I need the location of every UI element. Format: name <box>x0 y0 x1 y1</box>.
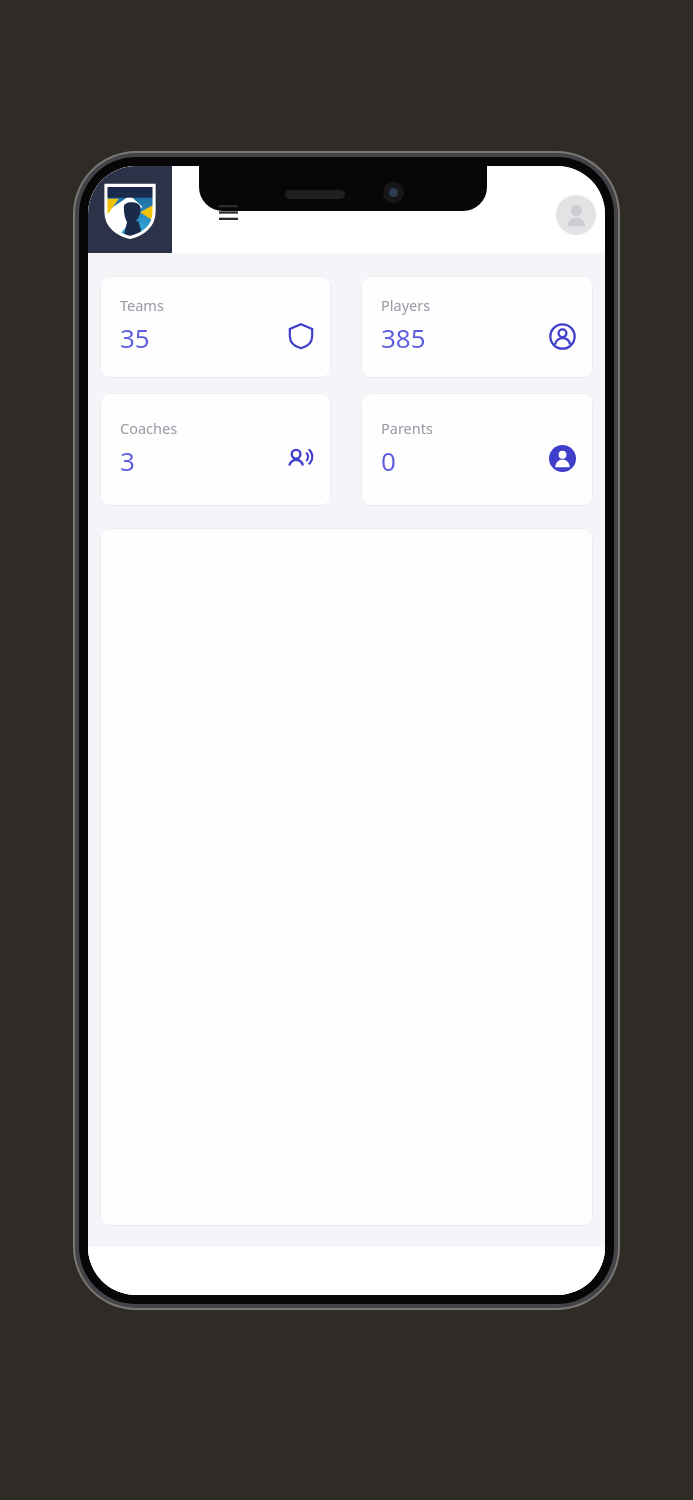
staticText: Players <box>381 295 431 315</box>
button[interactable]: Players <box>361 276 593 378</box>
button[interactable]: Coaches <box>100 393 331 506</box>
button[interactable]: Parents <box>361 393 593 506</box>
staticText: 35 <box>120 320 150 355</box>
staticText: 3 <box>120 443 135 478</box>
staticText: 385 <box>381 320 426 355</box>
button[interactable]: Profile <box>556 195 596 235</box>
button[interactable]: Menu <box>206 190 250 234</box>
button[interactable]: Club logo <box>88 166 172 253</box>
button[interactable]: Teams <box>100 276 331 378</box>
staticText: Coaches <box>120 418 178 438</box>
staticText: Teams <box>120 295 164 315</box>
staticText: 0 <box>381 443 396 478</box>
staticText: Parents <box>381 418 433 438</box>
